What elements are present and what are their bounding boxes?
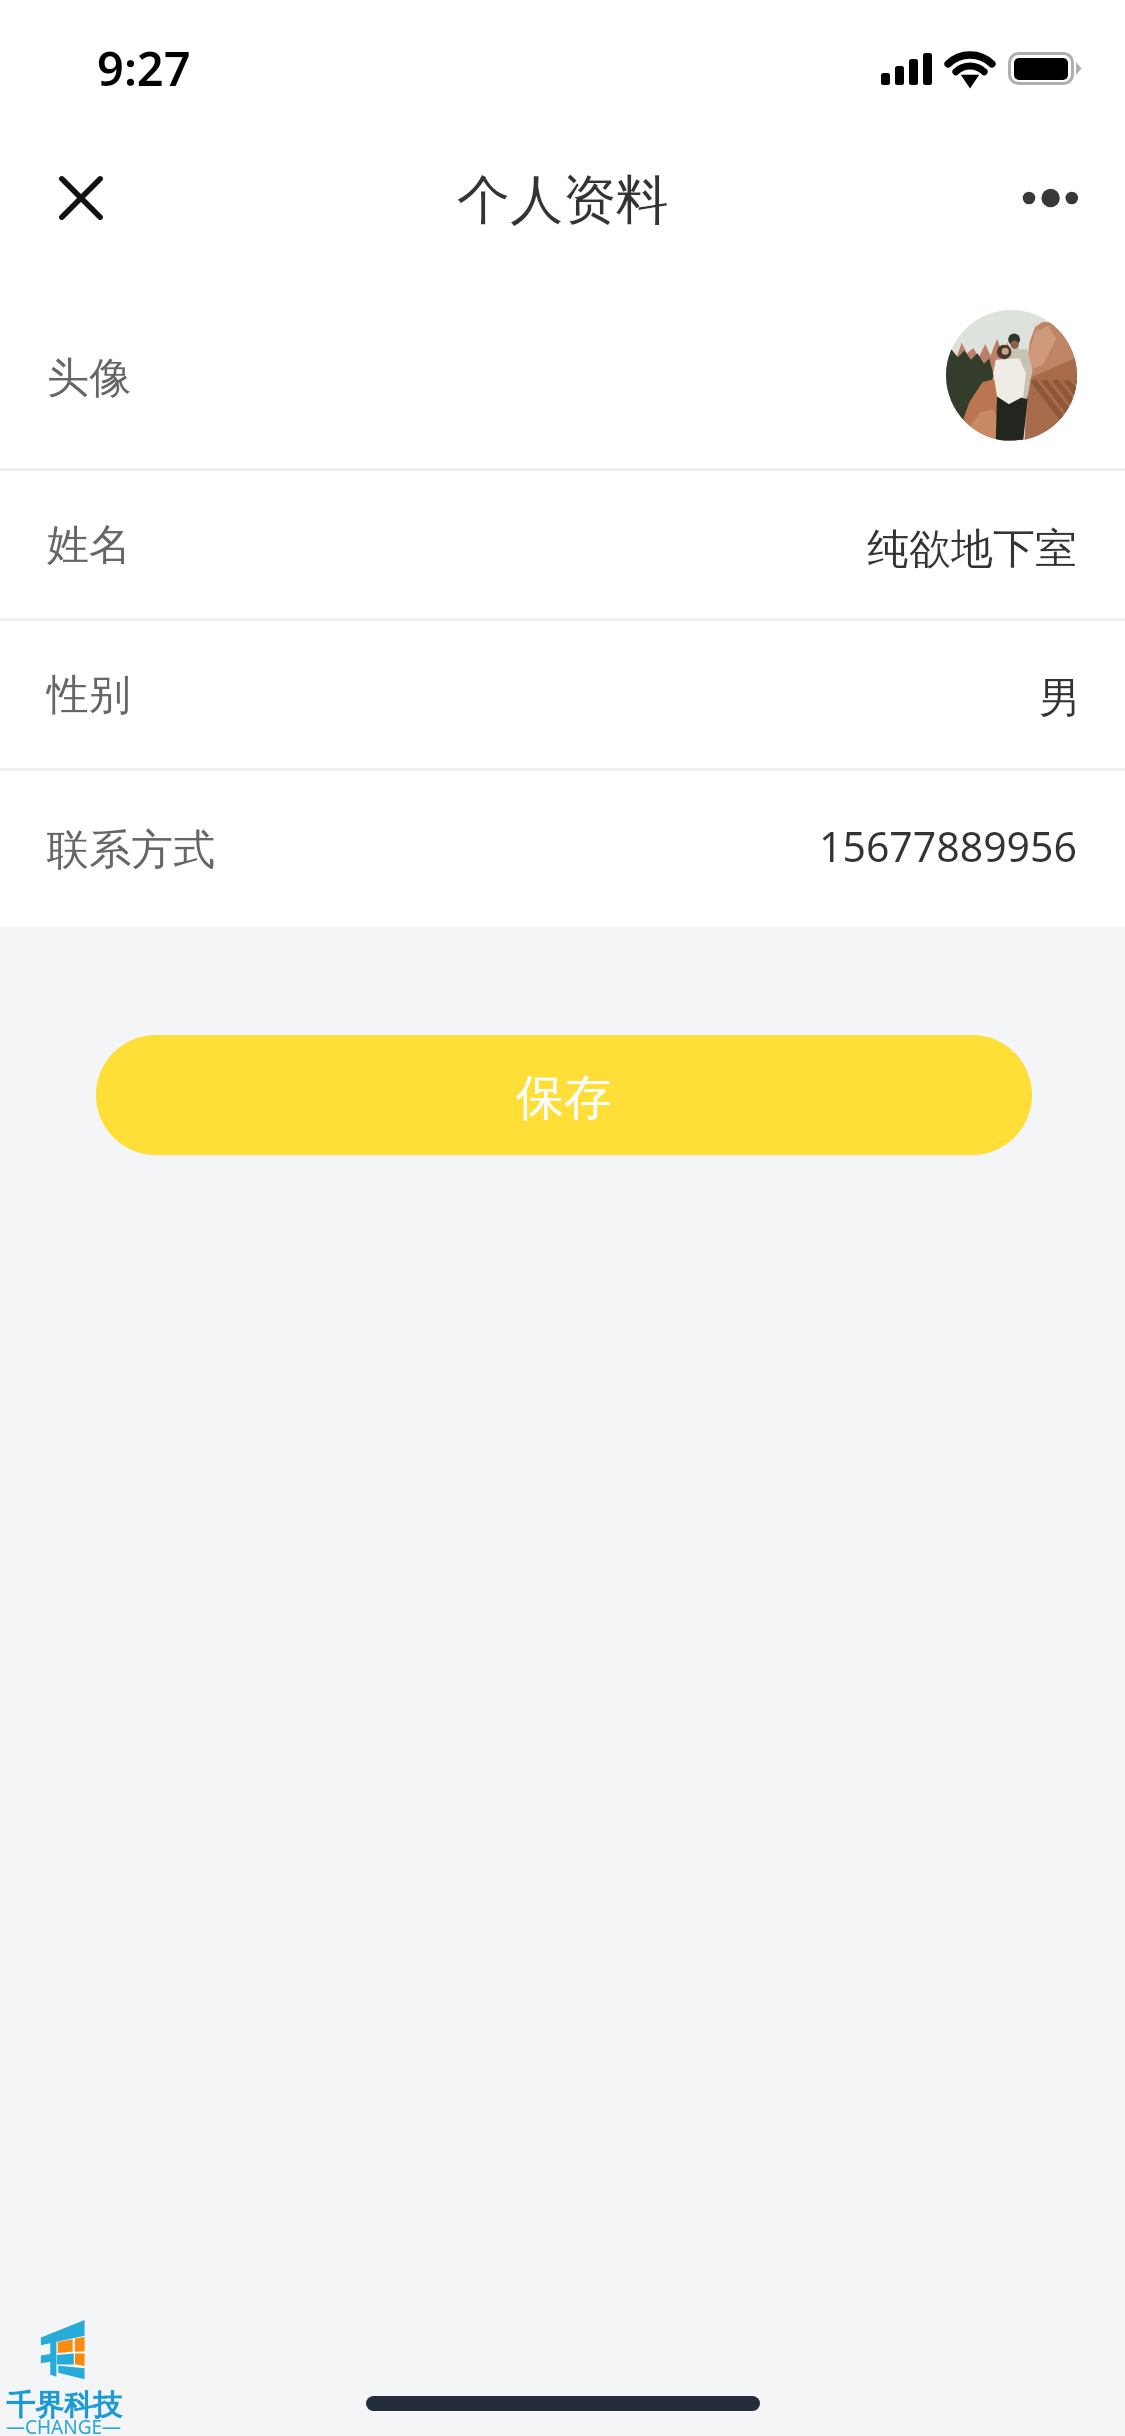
staticText: 9:27 (97, 36, 191, 100)
staticText: 姓名 (47, 519, 131, 572)
staticText: 联系方式 (47, 824, 215, 877)
button[interactable]: 姓名 (0, 471, 1125, 618)
staticText: 头像 (47, 352, 131, 405)
staticText: 男 (1039, 672, 1081, 725)
staticText: 纯欲地下室 (867, 523, 1077, 576)
staticText: 15677889956 (819, 818, 1077, 874)
staticText: 千界科技 (6, 2387, 122, 2424)
button[interactable]: 联系方式 (0, 771, 1125, 927)
staticText: 性别 (47, 669, 131, 722)
button[interactable]: Close (36, 153, 126, 243)
staticText: 个人资料 (457, 167, 669, 234)
staticText: —CHANGE— (6, 2414, 122, 2436)
button[interactable]: 头像 (0, 286, 1125, 468)
staticText: 保存 (516, 1068, 612, 1128)
button[interactable]: More options (1008, 153, 1098, 243)
button[interactable]: 保存 (96, 1035, 1032, 1155)
button[interactable]: 性别 (0, 621, 1125, 768)
button[interactable]: Change avatar (946, 310, 1077, 441)
